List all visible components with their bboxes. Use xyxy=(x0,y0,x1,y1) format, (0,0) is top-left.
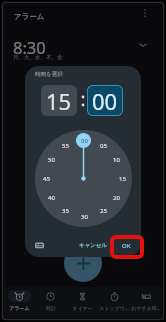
staticText: キャンセル xyxy=(79,242,108,249)
button[interactable]: Clock face xyxy=(35,130,132,227)
button[interactable]: おやすみ時… xyxy=(130,287,162,314)
button[interactable]: キャンセル xyxy=(77,238,109,253)
staticText: 時計 xyxy=(46,305,56,311)
staticText: ストップウ… xyxy=(99,305,129,312)
button[interactable]: 8:30 xyxy=(4,30,162,64)
staticText: 20 xyxy=(113,194,120,202)
button[interactable]: Switch to text input xyxy=(30,236,48,254)
other: Expand xyxy=(134,36,152,54)
staticText: 50 xyxy=(48,156,55,164)
staticText: おやすみ時… xyxy=(131,305,161,312)
staticText: アラーム xyxy=(9,305,30,311)
staticText: 15 xyxy=(119,175,126,183)
staticText: 45 xyxy=(43,175,50,183)
staticText: 時間を選択 xyxy=(35,71,63,78)
staticText: 35 xyxy=(62,207,69,215)
staticText: 05 xyxy=(100,142,107,150)
staticText: 8:30 xyxy=(13,36,46,58)
button[interactable]: 時計 xyxy=(35,287,66,314)
staticText: 00 xyxy=(92,86,118,116)
button[interactable]: OK xyxy=(115,238,137,253)
staticText: 00 xyxy=(81,137,88,145)
button[interactable]: ストップウ… xyxy=(98,287,130,314)
staticText: 30 xyxy=(81,213,88,221)
button[interactable]: 15 xyxy=(41,85,77,116)
staticText: 10 xyxy=(113,156,120,164)
button[interactable]: More options xyxy=(136,4,154,22)
button[interactable]: Add alarm xyxy=(64,244,102,282)
staticText: 15 xyxy=(46,86,72,116)
button[interactable]: アラーム xyxy=(4,287,35,314)
staticText: 55 xyxy=(62,142,69,150)
staticText: アラーム xyxy=(14,12,45,21)
staticText: OK xyxy=(122,242,131,250)
button[interactable]: 00 xyxy=(87,85,123,116)
staticText: 40 xyxy=(48,194,55,202)
staticText: タイマー xyxy=(72,305,93,311)
staticText: 25 xyxy=(100,207,107,215)
staticText: 月、火、水、木、金 xyxy=(13,54,63,61)
button[interactable]: タイマー xyxy=(66,287,98,314)
